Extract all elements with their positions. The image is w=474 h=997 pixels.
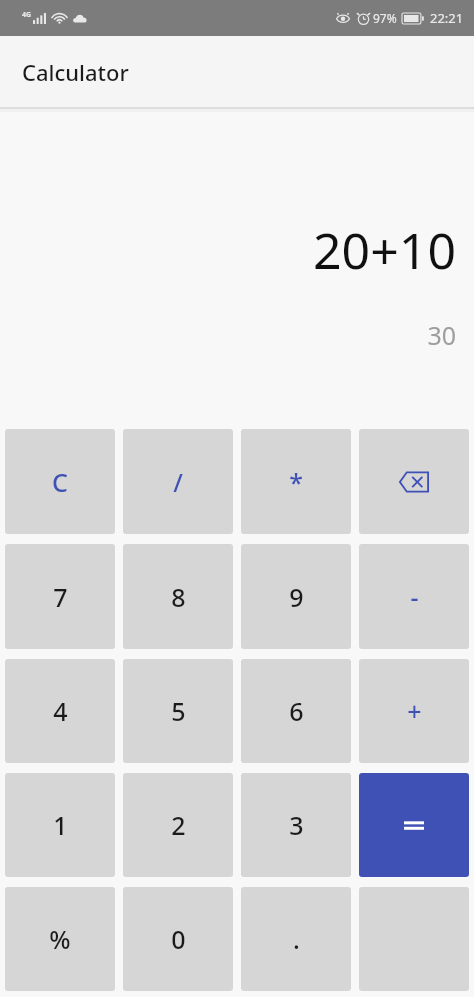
button[interactable]: 7: [5, 544, 115, 649]
button[interactable]: %: [5, 887, 115, 991]
staticText: 9: [289, 580, 304, 614]
staticText: -: [410, 580, 419, 614]
staticText: 5: [171, 694, 186, 728]
button[interactable]: +: [359, 659, 469, 763]
button[interactable]: C: [5, 429, 115, 534]
staticText: 30: [427, 318, 456, 352]
button[interactable]: *: [241, 429, 351, 534]
staticText: 4: [53, 694, 68, 728]
staticText: *: [289, 465, 303, 499]
button[interactable]: -: [359, 544, 469, 649]
staticText: C: [52, 465, 68, 499]
staticText: 3: [289, 808, 304, 842]
staticText: 4G: [22, 10, 32, 20]
staticText: 6: [289, 694, 304, 728]
staticText: 2: [171, 808, 186, 842]
staticText: Calculator: [22, 57, 129, 87]
staticText: 97%: [373, 10, 397, 26]
button[interactable]: 5: [123, 659, 233, 763]
staticText: 7: [53, 580, 68, 614]
staticText: /: [173, 465, 183, 499]
button[interactable]: Backspace: [359, 429, 469, 534]
button[interactable]: 6: [241, 659, 351, 763]
staticText: 20+10: [313, 216, 456, 284]
button[interactable]: 4: [5, 659, 115, 763]
staticText: 22:21: [430, 9, 464, 27]
staticText: 0: [171, 922, 186, 956]
button[interactable]: 8: [123, 544, 233, 649]
button[interactable]: 0: [123, 887, 233, 991]
button[interactable]: 3: [241, 773, 351, 877]
button[interactable]: /: [123, 429, 233, 534]
button[interactable]: 2: [123, 773, 233, 877]
button[interactable]: [359, 773, 469, 877]
button[interactable]: 1: [5, 773, 115, 877]
button[interactable]: 9: [241, 544, 351, 649]
button[interactable]: .: [241, 887, 351, 991]
staticText: +: [407, 694, 422, 728]
staticText: %: [49, 922, 71, 956]
staticText: 8: [171, 580, 186, 614]
staticText: .: [293, 922, 300, 956]
staticText: 1: [53, 808, 68, 842]
